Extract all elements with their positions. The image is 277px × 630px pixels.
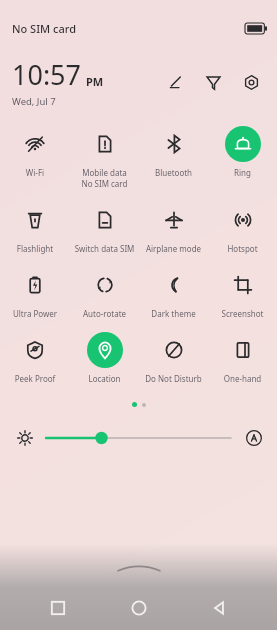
staticText: Do Not Disturb xyxy=(141,373,206,384)
staticText: Location xyxy=(72,373,137,384)
button[interactable]: Ultra Power xyxy=(0,263,70,323)
button[interactable]: Ring xyxy=(208,122,277,182)
button[interactable]: Wi-Fi xyxy=(0,122,70,182)
staticText: Screenshot xyxy=(210,308,275,319)
staticText: Ultra Power xyxy=(2,308,68,319)
button[interactable]: Bluetooth xyxy=(139,122,208,182)
button[interactable]: Recents xyxy=(36,586,80,630)
staticText: Airplane mode xyxy=(141,243,206,254)
staticText: Auto-rotate xyxy=(72,308,137,319)
staticText: Peek Proof xyxy=(2,373,68,384)
staticText: PM xyxy=(86,74,104,89)
button[interactable]: Hotspot xyxy=(208,198,277,258)
button[interactable]: Flashlight xyxy=(0,198,70,258)
button[interactable]: Auto-rotate xyxy=(70,263,139,323)
button[interactable]: One-hand xyxy=(208,328,277,388)
button[interactable]: Switch data SIM xyxy=(70,198,139,258)
button[interactable]: Location xyxy=(70,328,139,388)
button[interactable]: Dark theme xyxy=(139,263,208,323)
staticText: Wi-Fi xyxy=(2,167,68,178)
button[interactable]: Do Not Disturb xyxy=(139,328,208,388)
staticText: Mobile data xyxy=(72,167,137,178)
button[interactable]: Home xyxy=(117,586,161,630)
button[interactable] xyxy=(46,425,231,451)
button[interactable]: Settings xyxy=(237,68,265,96)
staticText: 10:57 xyxy=(12,56,82,93)
staticText: Wed, Jul 7 xyxy=(12,95,56,108)
button[interactable]: Screenshot xyxy=(208,263,277,323)
staticText: Ring xyxy=(210,167,275,178)
staticText: No SIM card xyxy=(72,178,137,189)
staticText: Bluetooth xyxy=(141,167,206,178)
staticText: Flashlight xyxy=(2,243,68,254)
button[interactable]: Back xyxy=(197,586,241,630)
staticText: Dark theme xyxy=(141,308,206,319)
staticText: Hotspot xyxy=(210,243,275,254)
button[interactable]: Filter xyxy=(199,68,227,96)
button[interactable]: Auto brightness xyxy=(243,427,265,449)
button[interactable]: Airplane mode xyxy=(139,198,208,258)
button[interactable]: Mobile data xyxy=(70,122,139,193)
button[interactable]: Peek Proof xyxy=(0,328,70,388)
button[interactable]: Edit xyxy=(161,68,189,96)
button[interactable]: Brightness xyxy=(14,427,36,449)
staticText: Switch data SIM xyxy=(72,243,137,254)
staticText: No SIM card xyxy=(12,21,76,36)
staticText: One-hand xyxy=(210,373,275,384)
